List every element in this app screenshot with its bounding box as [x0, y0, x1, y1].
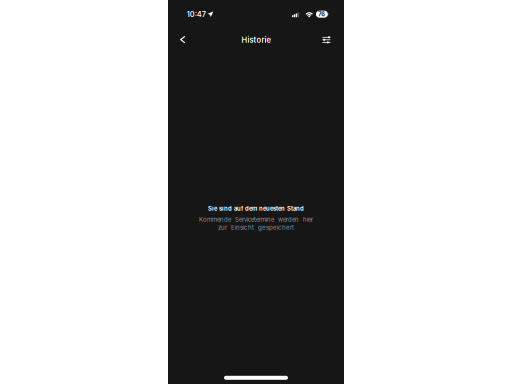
staticText: Sie sind auf dem neuesten Stand	[208, 205, 304, 212]
staticText: Historie	[241, 35, 270, 45]
staticText: zur Einsicht gespeichert	[218, 224, 294, 231]
staticText: 10:47	[187, 10, 206, 19]
button[interactable]: Filter	[314, 28, 338, 52]
staticText: 76	[318, 11, 325, 18]
staticText: Kommende Servicetermine werden hier	[199, 216, 313, 223]
button[interactable]: Back	[170, 28, 194, 52]
